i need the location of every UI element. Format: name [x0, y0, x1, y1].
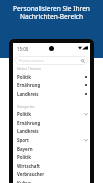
staticText: Bayern: [17, 146, 33, 152]
button[interactable]: Landkreis: [13, 89, 90, 98]
button[interactable]: Ernährung: [13, 118, 90, 127]
staticText: Landkreis: [17, 91, 39, 97]
staticText: Verbraucher: [17, 171, 45, 177]
staticText: Politik: [17, 154, 32, 160]
staticText: Landkreis: [17, 128, 39, 134]
staticText: Kultur: [17, 180, 31, 183]
staticText: Kategorien: [17, 104, 35, 109]
button[interactable]: Landkreis: [13, 126, 90, 135]
button[interactable]: Wirtschaft: [13, 161, 90, 170]
staticText: Wirtschaft: [17, 163, 40, 169]
other: Suchen: [81, 59, 85, 63]
button[interactable]: Sport: [13, 135, 90, 144]
staticText: Politik: [17, 74, 32, 80]
button[interactable]: Politik: [13, 109, 90, 118]
staticText: Ernährung: [17, 120, 41, 126]
staticText: Ernährung: [17, 82, 41, 88]
staticText: Meine Themen: [17, 66, 41, 71]
button[interactable]: Ernährung: [13, 80, 90, 89]
staticText: Politik: [17, 111, 32, 117]
staticText: Thema suchen: [18, 58, 45, 63]
staticText: Sport: [17, 137, 29, 143]
button[interactable]: Thema suchen: [15, 56, 88, 65]
button[interactable]: Politik: [13, 152, 90, 161]
button[interactable]: Verbraucher: [13, 169, 90, 178]
button[interactable]: Politik: [13, 72, 90, 81]
button[interactable]: Kultur: [13, 178, 90, 183]
button[interactable]: Bayern: [13, 144, 90, 153]
staticText: 15:00: [17, 46, 29, 52]
staticText: Personalisieren Sie Ihren Nachrichten-Be…: [13, 4, 90, 21]
